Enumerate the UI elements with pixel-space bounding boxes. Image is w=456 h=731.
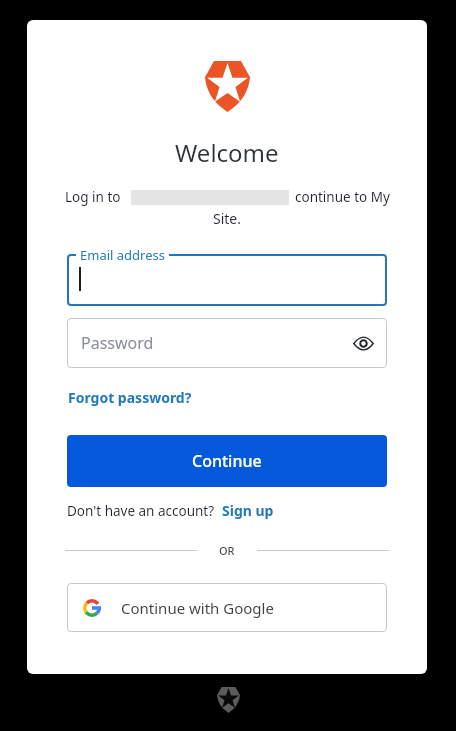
staticText: Welcome (175, 136, 279, 169)
button[interactable] (67, 254, 387, 306)
button[interactable] (351, 331, 375, 355)
button[interactable]: Continue (67, 435, 387, 487)
staticText: Don't have an account? (67, 502, 215, 520)
button[interactable]: Forgot password? (68, 388, 192, 407)
staticText: Password (81, 332, 154, 354)
staticText: Email address (80, 246, 165, 264)
staticText: continue to My (295, 188, 390, 206)
button[interactable]: Sign up (222, 501, 274, 520)
staticText: Log in to (65, 188, 121, 206)
staticText: OR (219, 543, 235, 558)
staticText: Continue with Google (121, 598, 274, 618)
button[interactable]: Password (67, 318, 387, 368)
staticText: Site. (213, 209, 241, 228)
button[interactable]: Continue with Google (67, 583, 387, 632)
staticText: Continue (192, 450, 262, 472)
